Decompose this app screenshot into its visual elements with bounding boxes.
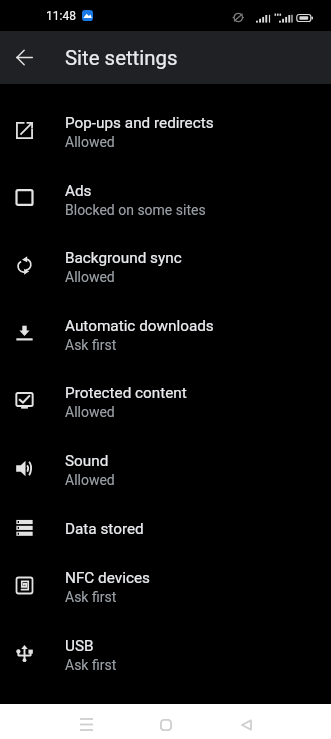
- staticText: Ask first: [65, 657, 117, 673]
- button[interactable]: Recent apps: [46, 707, 126, 739]
- staticText: Sound: [65, 452, 109, 470]
- button[interactable]: Background sync: [0, 233, 331, 301]
- button[interactable]: Home: [126, 707, 206, 739]
- staticText: Ask first: [65, 589, 117, 605]
- button[interactable]: Back: [0, 31, 48, 84]
- button[interactable]: Automatic downloads: [0, 301, 331, 368]
- staticText: Blocked on some sites: [65, 202, 206, 218]
- button[interactable]: Pop-ups and redirects: [0, 98, 331, 166]
- button[interactable]: NFC devices: [0, 553, 331, 621]
- staticText: NFC devices: [65, 569, 150, 587]
- staticText: Allowed: [65, 472, 115, 488]
- staticText: USB: [65, 637, 94, 655]
- staticText: Ask first: [65, 337, 117, 353]
- staticText: Allowed: [65, 134, 115, 150]
- staticText: Protected content: [65, 384, 187, 402]
- staticText: Pop-ups and redirects: [65, 114, 214, 132]
- button[interactable]: USB: [0, 621, 331, 689]
- button[interactable]: Ads: [0, 166, 331, 233]
- button[interactable]: Data stored: [0, 504, 331, 553]
- staticText: Background sync: [65, 249, 182, 267]
- button[interactable]: Protected content: [0, 368, 331, 436]
- staticText: Allowed: [65, 404, 115, 420]
- staticText: 11:48: [46, 9, 76, 23]
- staticText: Ads: [65, 182, 92, 200]
- staticText: Automatic downloads: [65, 317, 214, 335]
- staticText: Allowed: [65, 269, 115, 285]
- staticText: Data stored: [65, 520, 144, 538]
- staticText: Site settings: [65, 46, 178, 70]
- button[interactable]: Back: [206, 707, 286, 739]
- button[interactable]: Sound: [0, 436, 331, 504]
